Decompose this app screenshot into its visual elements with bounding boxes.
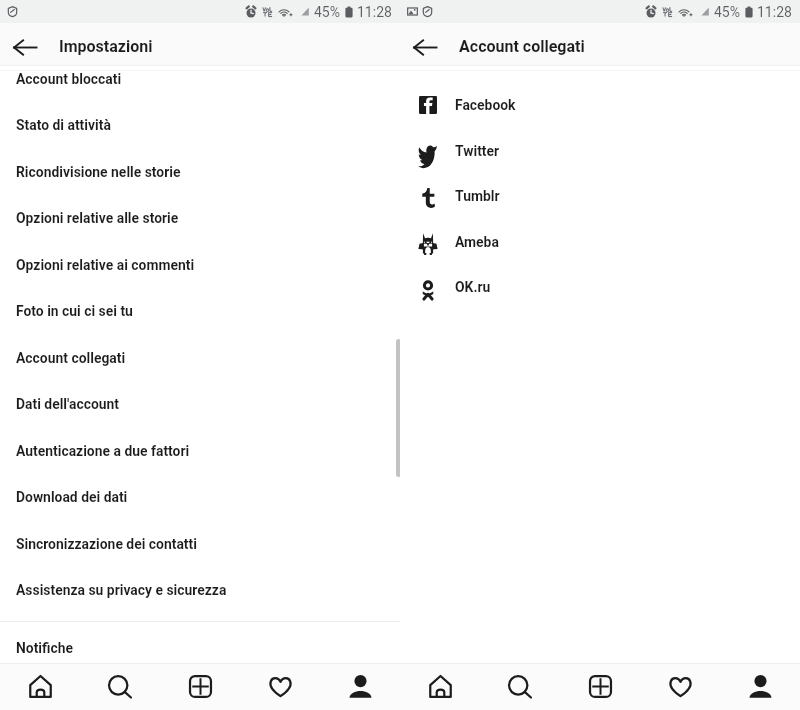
staticText: Assistenza su privacy e sicurezza — [16, 582, 227, 598]
staticText: Stato di attività — [16, 117, 111, 133]
button[interactable]: Activity — [240, 664, 320, 710]
staticText: Opzioni relative alle storie — [16, 210, 179, 226]
button[interactable]: Facebook — [400, 82, 800, 128]
button[interactable]: Foto in cui ci sei tu — [0, 287, 400, 334]
staticText: 11:28 — [757, 4, 792, 20]
button[interactable]: Back — [9, 31, 41, 63]
button[interactable]: Download dei dati — [0, 473, 400, 520]
button[interactable]: Tumblr — [400, 173, 800, 219]
staticText: OK.ru — [455, 279, 491, 295]
button[interactable]: Home — [0, 664, 80, 710]
button[interactable]: Search — [80, 664, 160, 710]
staticText: Account collegati — [459, 37, 585, 56]
staticText: Ricondivisione nelle storie — [16, 164, 181, 180]
staticText: Ameba — [455, 234, 499, 250]
staticText: Sincronizzazione dei contatti — [16, 536, 197, 552]
staticText: Impostazioni — [59, 37, 153, 56]
staticText: 45% — [314, 4, 340, 20]
button[interactable]: New post — [160, 664, 240, 710]
button[interactable]: Activity — [640, 664, 720, 710]
button[interactable]: Profile — [720, 664, 800, 710]
button[interactable]: Autenticazione a due fattori — [0, 427, 400, 474]
button[interactable]: Notifiche — [0, 625, 400, 671]
button[interactable]: Search — [480, 664, 560, 710]
button[interactable]: Opzioni relative ai commenti — [0, 241, 400, 288]
button[interactable]: Profile — [320, 664, 400, 710]
staticText: Notifiche — [16, 640, 74, 656]
button[interactable]: Ricondivisione nelle storie — [0, 148, 400, 195]
button[interactable]: Home — [400, 664, 480, 710]
staticText: Twitter — [455, 143, 500, 159]
button[interactable]: Opzioni relative alle storie — [0, 194, 400, 241]
staticText: Autenticazione a due fattori — [16, 443, 190, 459]
button[interactable]: Account bloccati — [0, 55, 400, 102]
button[interactable]: Twitter — [400, 128, 800, 174]
button[interactable]: Dati dell'account — [0, 380, 400, 427]
staticText: 11:28 — [357, 4, 392, 20]
staticText: Tumblr — [455, 188, 500, 204]
staticText: Account collegati — [16, 350, 126, 366]
button[interactable]: Assistenza su privacy e sicurezza — [0, 566, 400, 613]
button[interactable]: Back — [409, 31, 441, 63]
staticText: 45% — [714, 4, 740, 20]
staticText: Facebook — [455, 97, 516, 113]
button[interactable]: New post — [560, 664, 640, 710]
button[interactable]: Sincronizzazione dei contatti — [0, 520, 400, 567]
staticText: Foto in cui ci sei tu — [16, 303, 133, 319]
staticText: Download dei dati — [16, 489, 128, 505]
staticText: Dati dell'account — [16, 396, 119, 412]
button[interactable]: Stato di attività — [0, 101, 400, 148]
staticText: Account bloccati — [16, 71, 122, 87]
button[interactable]: OK.ru — [400, 264, 800, 310]
button[interactable]: Ameba — [400, 219, 800, 265]
button[interactable]: Account collegati — [0, 334, 400, 381]
staticText: Opzioni relative ai commenti — [16, 257, 195, 273]
